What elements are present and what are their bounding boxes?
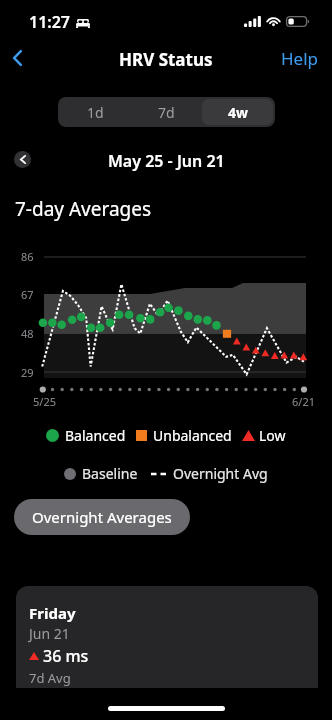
button[interactable]: 7d [131,99,202,125]
staticText: Jun 21 [29,624,70,643]
staticText: 29 [21,365,34,380]
button[interactable]: 1d [60,99,131,125]
staticText: Overnight Averages [32,507,172,527]
staticText: 5/25 [33,394,56,409]
staticText: Balanced [65,426,126,445]
staticText: 7d Avg [29,669,71,687]
staticText: 1d [87,103,104,122]
staticText: Help [281,47,319,70]
staticText: 86 [21,249,34,264]
staticText: Overnight Avg [173,464,268,483]
staticText: Friday [29,603,76,623]
button[interactable]: Previous period [14,151,31,168]
staticText: 11:27 [29,11,71,33]
button[interactable]: 4w [202,99,273,125]
staticText: 67 [21,287,34,302]
button[interactable]: Friday [16,586,318,688]
staticText: HRV Status [119,48,213,71]
staticText: 7d [158,103,175,122]
staticText: Unbalanced [153,426,232,445]
button[interactable]: Help [276,43,324,73]
staticText: 36 ms [43,645,89,667]
staticText: 48 [21,326,34,341]
staticText: 4w [228,103,248,122]
button[interactable]: Back [0,40,34,76]
staticText: May 25 - Jun 21 [108,150,225,172]
staticText: Baseline [82,464,138,483]
staticText: Low [259,426,286,445]
button[interactable]: Overnight Averages [14,499,190,535]
staticText: 7-day Averages [15,196,152,222]
staticText: 6/21 [292,394,315,409]
